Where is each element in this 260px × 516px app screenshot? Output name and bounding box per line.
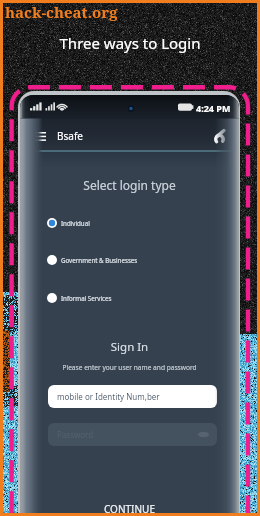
button[interactable]: Individual (47, 215, 239, 231)
staticText: Select login type (20, 177, 239, 193)
staticText: Bsafe (57, 129, 83, 143)
button[interactable]: Informal Services (47, 290, 239, 306)
staticText: 4:24 PM (196, 102, 231, 114)
staticText: hack-cheat.org (5, 2, 118, 22)
staticText: Password (57, 429, 94, 440)
staticText: Informal Services (61, 294, 112, 302)
staticText: Government & Businesses (61, 256, 138, 264)
staticText: mobile or Identity Num,ber (57, 391, 160, 402)
button[interactable]: Government & Businesses (47, 252, 239, 268)
button[interactable]: Bsafe logo (208, 125, 230, 147)
staticText: CONTINUE (104, 502, 155, 516)
staticText: Three ways to Login (0, 33, 260, 53)
staticText: Please enter your user name and password (20, 363, 239, 372)
staticText: Sign In (20, 339, 239, 355)
button[interactable]: CONTINUE (20, 501, 239, 516)
button[interactable]: Open navigation menu (29, 125, 51, 147)
staticText: Individual (61, 219, 90, 227)
button[interactable]: mobile or Identity Num,ber (48, 385, 217, 408)
